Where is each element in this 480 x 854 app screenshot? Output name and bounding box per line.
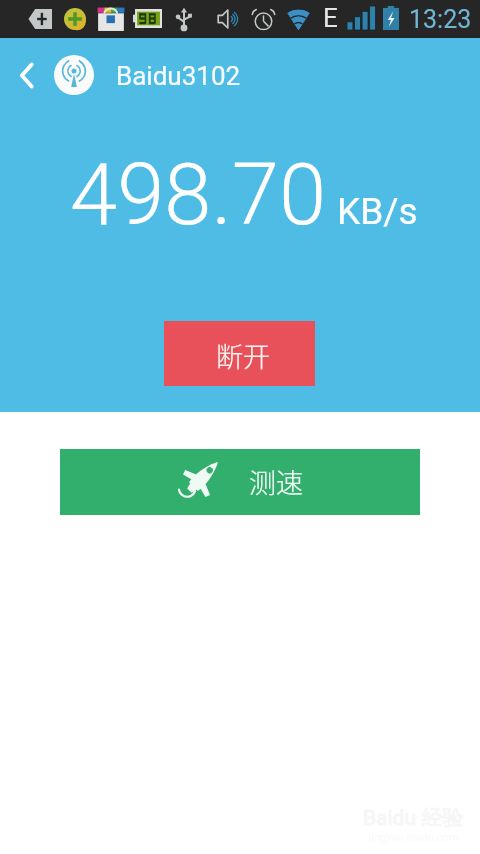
staticText: 13:23 bbox=[409, 5, 472, 34]
staticText: 498.70 bbox=[70, 145, 327, 245]
button[interactable]: 断开 bbox=[164, 321, 315, 386]
staticText: E bbox=[323, 3, 338, 33]
button[interactable]: 测速 bbox=[60, 449, 420, 515]
staticText: 断开 bbox=[216, 336, 270, 375]
staticText: Baidu 经验 bbox=[363, 805, 464, 831]
staticText: KB/s bbox=[337, 190, 418, 233]
button[interactable]: Baidu3102 bbox=[50, 48, 250, 102]
button[interactable]: Back bbox=[6, 55, 46, 95]
staticText: 测速 bbox=[249, 462, 303, 501]
staticText: Baidu3102 bbox=[116, 61, 241, 91]
